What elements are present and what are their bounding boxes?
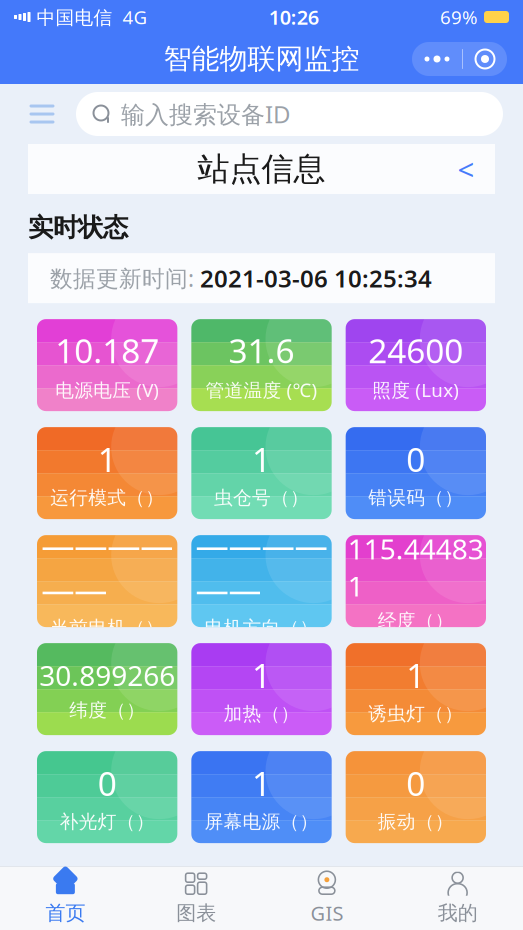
staticText: 1	[252, 653, 271, 697]
staticText: 0	[406, 761, 425, 805]
button[interactable]: 30.899266	[37, 643, 177, 735]
staticText: 站点信息	[197, 149, 325, 189]
staticText: 管道温度 (℃)	[205, 377, 317, 402]
button[interactable]: ——————	[37, 535, 177, 627]
button[interactable]: 1	[346, 643, 486, 735]
staticText: 补光灯（）	[60, 810, 155, 833]
staticText: 振动（）	[378, 810, 454, 833]
staticText: 虫仓号（）	[214, 486, 309, 509]
staticText: 1	[252, 761, 271, 805]
staticText: 1	[252, 437, 271, 481]
staticText: 69%	[440, 5, 478, 29]
staticText: 纬度（）	[69, 699, 145, 722]
button[interactable]: Menu	[22, 94, 62, 134]
staticText: 当前电机（）	[50, 616, 164, 639]
button[interactable]: ——————	[191, 535, 332, 627]
button[interactable]: 1	[191, 427, 332, 519]
staticText: 错误码（）	[368, 486, 463, 509]
staticText: 2021-03-06 10:25:34	[200, 262, 432, 294]
button[interactable]: 10.187	[37, 319, 177, 411]
staticText: 1	[98, 437, 117, 481]
staticText: 10.187	[55, 328, 159, 372]
staticText: 运行模式（）	[50, 486, 164, 509]
staticText: 24600	[368, 328, 463, 372]
staticText: 照度 (Lux)	[372, 377, 459, 402]
staticText: <	[457, 149, 474, 188]
staticText: 输入搜索设备ID	[121, 98, 291, 130]
button[interactable]: 我的	[392, 867, 523, 930]
staticText: 首页	[45, 901, 85, 925]
staticText: 诱虫灯（）	[368, 702, 463, 725]
staticText: ——————	[195, 523, 327, 611]
button[interactable]: 115.444831	[346, 535, 486, 627]
button[interactable]: Back	[449, 152, 483, 186]
button[interactable]: 图表	[131, 867, 262, 930]
staticText: 中国电信 4G	[30, 5, 147, 29]
button[interactable]: 0	[346, 751, 486, 843]
staticText: 1	[406, 653, 425, 697]
staticText: 30.899266	[39, 657, 175, 694]
staticText: 我的	[438, 901, 478, 925]
button[interactable]: GIS	[261, 867, 392, 930]
staticText: 电机方向（）	[204, 616, 318, 639]
staticText: 0	[98, 761, 117, 805]
staticText: 0	[406, 437, 425, 481]
staticText: 数据更新时间:	[50, 263, 194, 293]
staticText: 电源电压 (V)	[55, 377, 159, 402]
button[interactable]: 31.6	[191, 319, 332, 411]
button[interactable]: 1	[191, 643, 332, 735]
staticText: 10:26	[269, 4, 319, 30]
staticText: 屏幕电源（）	[204, 810, 318, 833]
staticText: 31.6	[228, 328, 294, 372]
staticText: 加热（）	[223, 702, 299, 725]
staticText: 经度（）	[378, 609, 454, 632]
staticText: 图表	[176, 901, 216, 925]
button[interactable]: 输入搜索设备ID	[76, 92, 503, 136]
staticText: 实时状态	[28, 212, 128, 243]
button[interactable]: 24600	[346, 319, 486, 411]
button[interactable]: More options	[412, 42, 507, 76]
staticText: 115.444831	[348, 530, 484, 604]
button[interactable]: 1	[37, 427, 177, 519]
button[interactable]: 1	[191, 751, 332, 843]
button[interactable]: 0	[37, 751, 177, 843]
button[interactable]: 首页	[0, 867, 131, 930]
staticText: 智能物联网监控	[163, 42, 359, 76]
staticText: GIS	[310, 900, 343, 926]
staticText: ——————	[41, 523, 173, 611]
button[interactable]: 0	[346, 427, 486, 519]
